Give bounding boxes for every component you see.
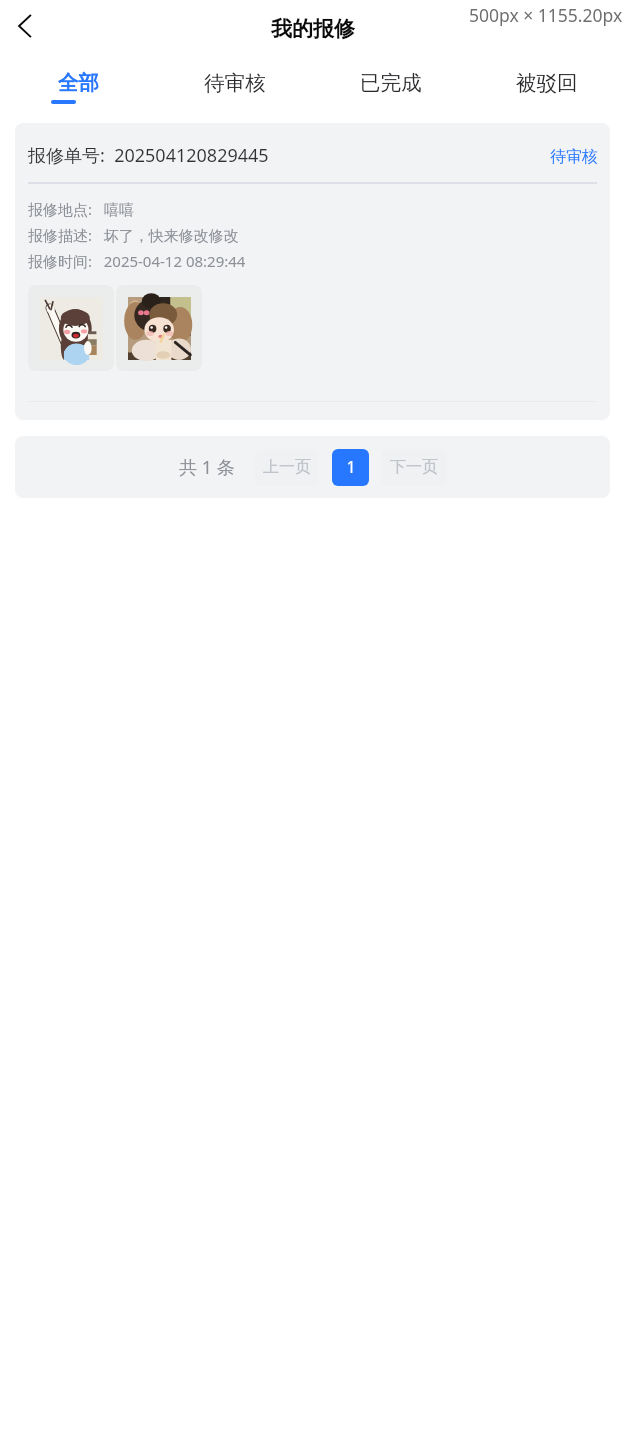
staticText: 待审核 [550,147,598,167]
staticText: 1 [346,456,356,478]
staticText: 被驳回 [516,70,578,96]
button[interactable]: 下一页 [381,449,447,486]
button[interactable]: 被驳回 [469,53,625,108]
staticText: 报修单号: 202504120829445 [28,143,269,168]
button[interactable]: Photo [116,285,202,371]
staticText: 报修描述: 坏了，快来修改修改 [28,225,239,245]
button[interactable]: 全部 [0,53,157,108]
staticText: 上一页 [263,457,311,477]
button[interactable]: Back [5,7,43,45]
staticText: 待审核 [204,70,266,96]
staticText: 我的报修 [271,16,355,42]
button[interactable]: 待审核 [157,53,313,108]
staticText: 500px × 1155.20px [469,3,623,27]
button[interactable]: 1 [332,449,369,486]
staticText: 共 1 条 [179,455,235,480]
button[interactable]: 上一页 [255,449,318,486]
staticText: 已完成 [360,70,422,96]
staticText: 报修地点: 嘻嘻 [28,199,134,219]
staticText: 下一页 [390,457,438,477]
staticText: 全部 [58,70,99,96]
staticText: 报修时间: 2025-04-12 08:29:44 [28,251,246,271]
button[interactable]: 报修单号: 202504120829445 [15,123,610,420]
button[interactable]: Photo [28,285,114,371]
button[interactable]: 已完成 [313,53,469,108]
